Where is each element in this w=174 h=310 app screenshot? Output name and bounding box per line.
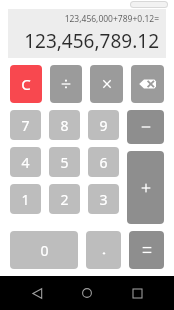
button[interactable]: 2	[49, 184, 80, 214]
button[interactable]: 3	[88, 184, 119, 214]
staticText: 123,456,789.12	[24, 28, 159, 54]
other: Multiply	[99, 76, 115, 92]
button[interactable]: Recent apps	[124, 280, 150, 306]
staticText: 6	[99, 153, 108, 172]
button[interactable]: 4	[10, 147, 41, 177]
button[interactable]: Home	[74, 280, 100, 306]
other: Plus	[138, 180, 154, 196]
staticText: 0	[40, 241, 49, 260]
button[interactable]: 6	[88, 147, 119, 177]
button[interactable]: 7	[10, 110, 41, 140]
staticText: 2	[60, 190, 69, 209]
staticText: 123,456,000+789+0.12=	[64, 13, 159, 25]
staticText: 8	[60, 116, 69, 135]
button[interactable]: Equals	[129, 231, 164, 269]
button[interactable]: Decimal point	[86, 231, 121, 269]
staticText: C	[21, 74, 31, 94]
staticText: 4	[21, 153, 30, 172]
other: Equals	[139, 242, 155, 258]
button[interactable]: 1	[10, 184, 41, 214]
button[interactable]: Plus	[127, 151, 164, 224]
other: Divide	[58, 76, 74, 92]
button[interactable]: Multiply	[90, 65, 123, 103]
other: Minus	[138, 119, 154, 135]
other: Decimal point	[97, 243, 111, 257]
button[interactable]: Back	[24, 280, 50, 306]
staticText: 7	[21, 116, 30, 135]
button[interactable]: 5	[49, 147, 80, 177]
button[interactable]: C	[10, 65, 42, 103]
button[interactable]: 9	[88, 110, 119, 140]
staticText: 3	[99, 190, 108, 209]
button[interactable]: Backspace	[131, 65, 164, 103]
button[interactable]: 0	[10, 231, 78, 269]
staticText: 5	[60, 153, 69, 172]
staticText: 1	[21, 190, 30, 209]
button[interactable]: Divide	[50, 65, 82, 103]
staticText: 9	[99, 116, 108, 135]
button[interactable]: Minus	[127, 110, 164, 144]
button[interactable]: 8	[49, 110, 80, 140]
